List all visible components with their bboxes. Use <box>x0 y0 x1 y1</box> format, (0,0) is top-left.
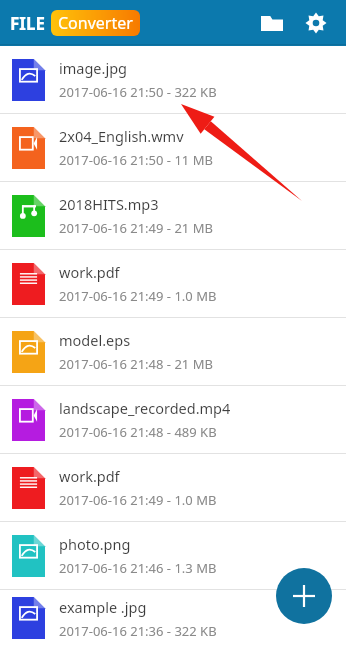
button[interactable]: example .jpg <box>0 590 346 646</box>
staticText: 2017-06-16 21:49 - 21 MB <box>59 219 213 237</box>
staticText: example .jpg <box>59 597 147 617</box>
button[interactable]: model.eps <box>0 318 346 385</box>
staticText: image.jpg <box>59 58 127 78</box>
staticText: 2017-06-16 21:48 - 489 KB <box>59 423 217 441</box>
staticText: 2017-06-16 21:48 - 21 MB <box>59 355 213 373</box>
staticText: Converter <box>58 12 133 34</box>
button[interactable]: work.pdf <box>0 250 346 317</box>
staticText: 2017-06-16 21:46 - 1.3 MB <box>59 559 217 577</box>
staticText: 2017-06-16 21:50 - 322 KB <box>59 83 217 101</box>
button[interactable]: 2018HITS.mp3 <box>0 182 346 249</box>
button[interactable]: photo.png <box>0 522 346 589</box>
staticText: landscape_recorded.mp4 <box>59 398 231 418</box>
button[interactable]: work.pdf <box>0 454 346 521</box>
button[interactable]: Browse folders <box>252 3 292 43</box>
button[interactable]: Add file <box>276 568 332 624</box>
button[interactable]: image.jpg <box>0 46 346 113</box>
staticText: 2017-06-16 21:49 - 1.0 MB <box>59 287 217 305</box>
staticText: 2017-06-16 21:36 - 322 KB <box>59 622 217 640</box>
staticText: 2017-06-16 21:50 - 11 MB <box>59 151 213 169</box>
staticText: work.pdf <box>59 466 120 486</box>
staticText: FILE <box>10 12 45 35</box>
staticText: photo.png <box>59 534 131 554</box>
staticText: 2017-06-16 21:49 - 1.0 MB <box>59 491 217 509</box>
staticText: 2018HITS.mp3 <box>59 194 159 214</box>
staticText: work.pdf <box>59 262 120 282</box>
button[interactable]: Settings <box>296 3 336 43</box>
button[interactable]: 2x04_English.wmv <box>0 114 346 181</box>
staticText: 2x04_English.wmv <box>59 126 184 146</box>
button[interactable]: landscape_recorded.mp4 <box>0 386 346 453</box>
staticText: model.eps <box>59 330 131 350</box>
